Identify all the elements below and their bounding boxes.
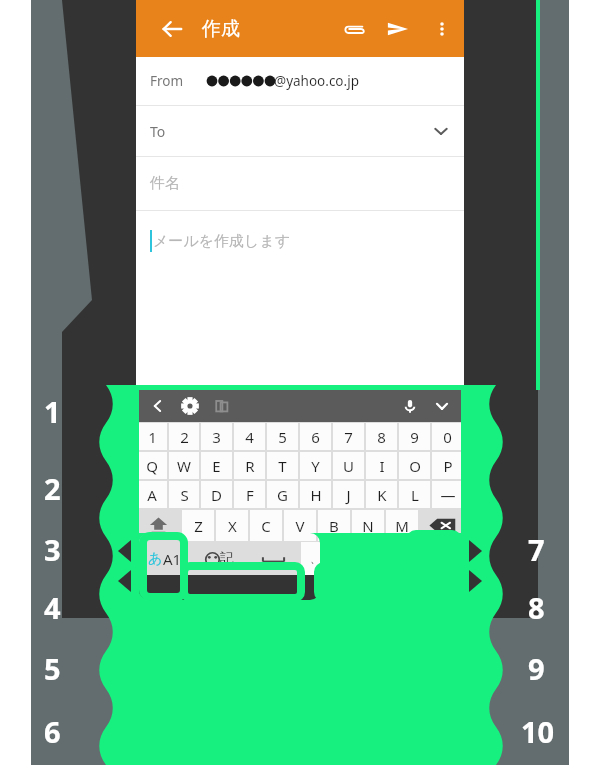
button[interactable]: Backspace xyxy=(420,510,463,541)
button[interactable]: A xyxy=(137,481,167,508)
button[interactable]: C xyxy=(250,510,282,541)
staticText: A1 xyxy=(163,549,182,569)
button[interactable]: Space xyxy=(247,543,300,574)
staticText: 、。 xyxy=(310,552,332,566)
button[interactable]: 、。 xyxy=(301,542,341,575)
button[interactable]: B xyxy=(318,510,350,541)
button[interactable]: 9 xyxy=(399,423,430,450)
button[interactable]: Previous xyxy=(142,390,174,422)
button[interactable]: Z xyxy=(182,510,214,541)
staticText: 7 xyxy=(344,427,353,447)
button[interactable]: 8 xyxy=(366,423,397,450)
staticText: X xyxy=(228,516,237,536)
button[interactable]: X xyxy=(216,510,248,541)
button[interactable]: M xyxy=(386,510,418,541)
button[interactable]: 4 xyxy=(234,423,265,450)
button[interactable]: 3 xyxy=(201,423,232,450)
button[interactable]: Send xyxy=(376,0,420,57)
staticText: 3 xyxy=(212,427,221,447)
staticText: H xyxy=(310,485,322,505)
button[interactable]: R xyxy=(234,452,265,479)
staticText: F xyxy=(246,485,254,505)
staticText: O xyxy=(409,456,421,476)
button[interactable]: To xyxy=(136,106,464,156)
button[interactable]: S xyxy=(169,481,199,508)
button[interactable]: H xyxy=(300,481,331,508)
staticText: 2 xyxy=(180,427,189,447)
button[interactable]: K xyxy=(366,481,397,508)
button[interactable]: 7 xyxy=(333,423,364,450)
staticText: 3 xyxy=(44,530,61,569)
staticText: V xyxy=(295,516,305,536)
button[interactable]: G xyxy=(267,481,298,508)
staticText: 6 xyxy=(311,427,320,447)
button[interactable]: More options xyxy=(422,0,462,57)
button[interactable]: N xyxy=(352,510,384,541)
button[interactable]: U xyxy=(333,452,364,479)
button[interactable]: Settings xyxy=(174,390,206,422)
button[interactable]: Hide keyboard xyxy=(426,390,458,422)
button[interactable]: Shift xyxy=(137,510,180,541)
button[interactable]: 0 xyxy=(432,423,463,450)
button[interactable]: O xyxy=(399,452,430,479)
button[interactable]: J xyxy=(333,481,364,508)
staticText: Z xyxy=(194,516,203,536)
button[interactable]: Copy xyxy=(206,390,238,422)
staticText: L xyxy=(411,485,419,505)
button[interactable]: F xyxy=(234,481,265,508)
button[interactable]: Y xyxy=(300,452,331,479)
staticText: メールを作成します xyxy=(153,232,291,251)
button[interactable]: P xyxy=(432,452,463,479)
staticText: 8 xyxy=(528,588,545,627)
staticText: 0 xyxy=(443,427,452,447)
button[interactable]: 1 xyxy=(137,423,167,450)
staticText: A xyxy=(147,485,157,505)
staticText: To xyxy=(150,122,166,141)
button[interactable]: Attach xyxy=(332,0,376,57)
staticText: P xyxy=(443,456,453,476)
staticText: M xyxy=(395,516,409,536)
button[interactable]: From xyxy=(136,57,464,105)
staticText: 7 xyxy=(528,530,545,569)
button[interactable]: メールを作成します xyxy=(136,211,464,271)
staticText: 6 xyxy=(44,712,61,751)
button[interactable]: V xyxy=(284,510,316,541)
staticText: From xyxy=(150,72,184,90)
button[interactable]: 5 xyxy=(267,423,298,450)
button[interactable]: 6 xyxy=(300,423,331,450)
button[interactable]: 2 xyxy=(169,423,199,450)
staticText: 9 xyxy=(528,649,545,688)
staticText: Y xyxy=(311,456,320,476)
button[interactable]: 件名 xyxy=(136,157,464,210)
button[interactable]: — xyxy=(432,481,463,508)
button[interactable]: E xyxy=(201,452,232,479)
button[interactable]: Voice input xyxy=(394,390,426,422)
staticText: 記 xyxy=(220,550,234,568)
button[interactable]: Q xyxy=(137,452,167,479)
button[interactable]: Back xyxy=(150,0,194,57)
staticText: @yahoo.co.jp xyxy=(274,72,359,90)
button[interactable]: L xyxy=(399,481,430,508)
staticText: C xyxy=(261,516,271,536)
button[interactable]: D xyxy=(201,481,232,508)
staticText: 5 xyxy=(44,649,61,688)
staticText: B xyxy=(329,516,339,536)
button[interactable]: I xyxy=(366,452,397,479)
button[interactable]: T xyxy=(267,452,298,479)
button[interactable]: W xyxy=(169,452,199,479)
staticText: — xyxy=(440,485,456,505)
staticText: S xyxy=(180,485,189,505)
button[interactable]: 記 xyxy=(193,542,246,575)
staticText: 5 xyxy=(278,427,287,447)
staticText: 9 xyxy=(410,427,419,447)
staticText: 1 xyxy=(148,427,157,447)
button[interactable]: あ xyxy=(136,542,193,575)
staticText: 作成 xyxy=(202,17,240,41)
staticText: 10 xyxy=(521,712,555,751)
staticText: I xyxy=(379,456,385,476)
staticText: Q xyxy=(146,456,158,476)
staticText: G xyxy=(277,485,288,505)
